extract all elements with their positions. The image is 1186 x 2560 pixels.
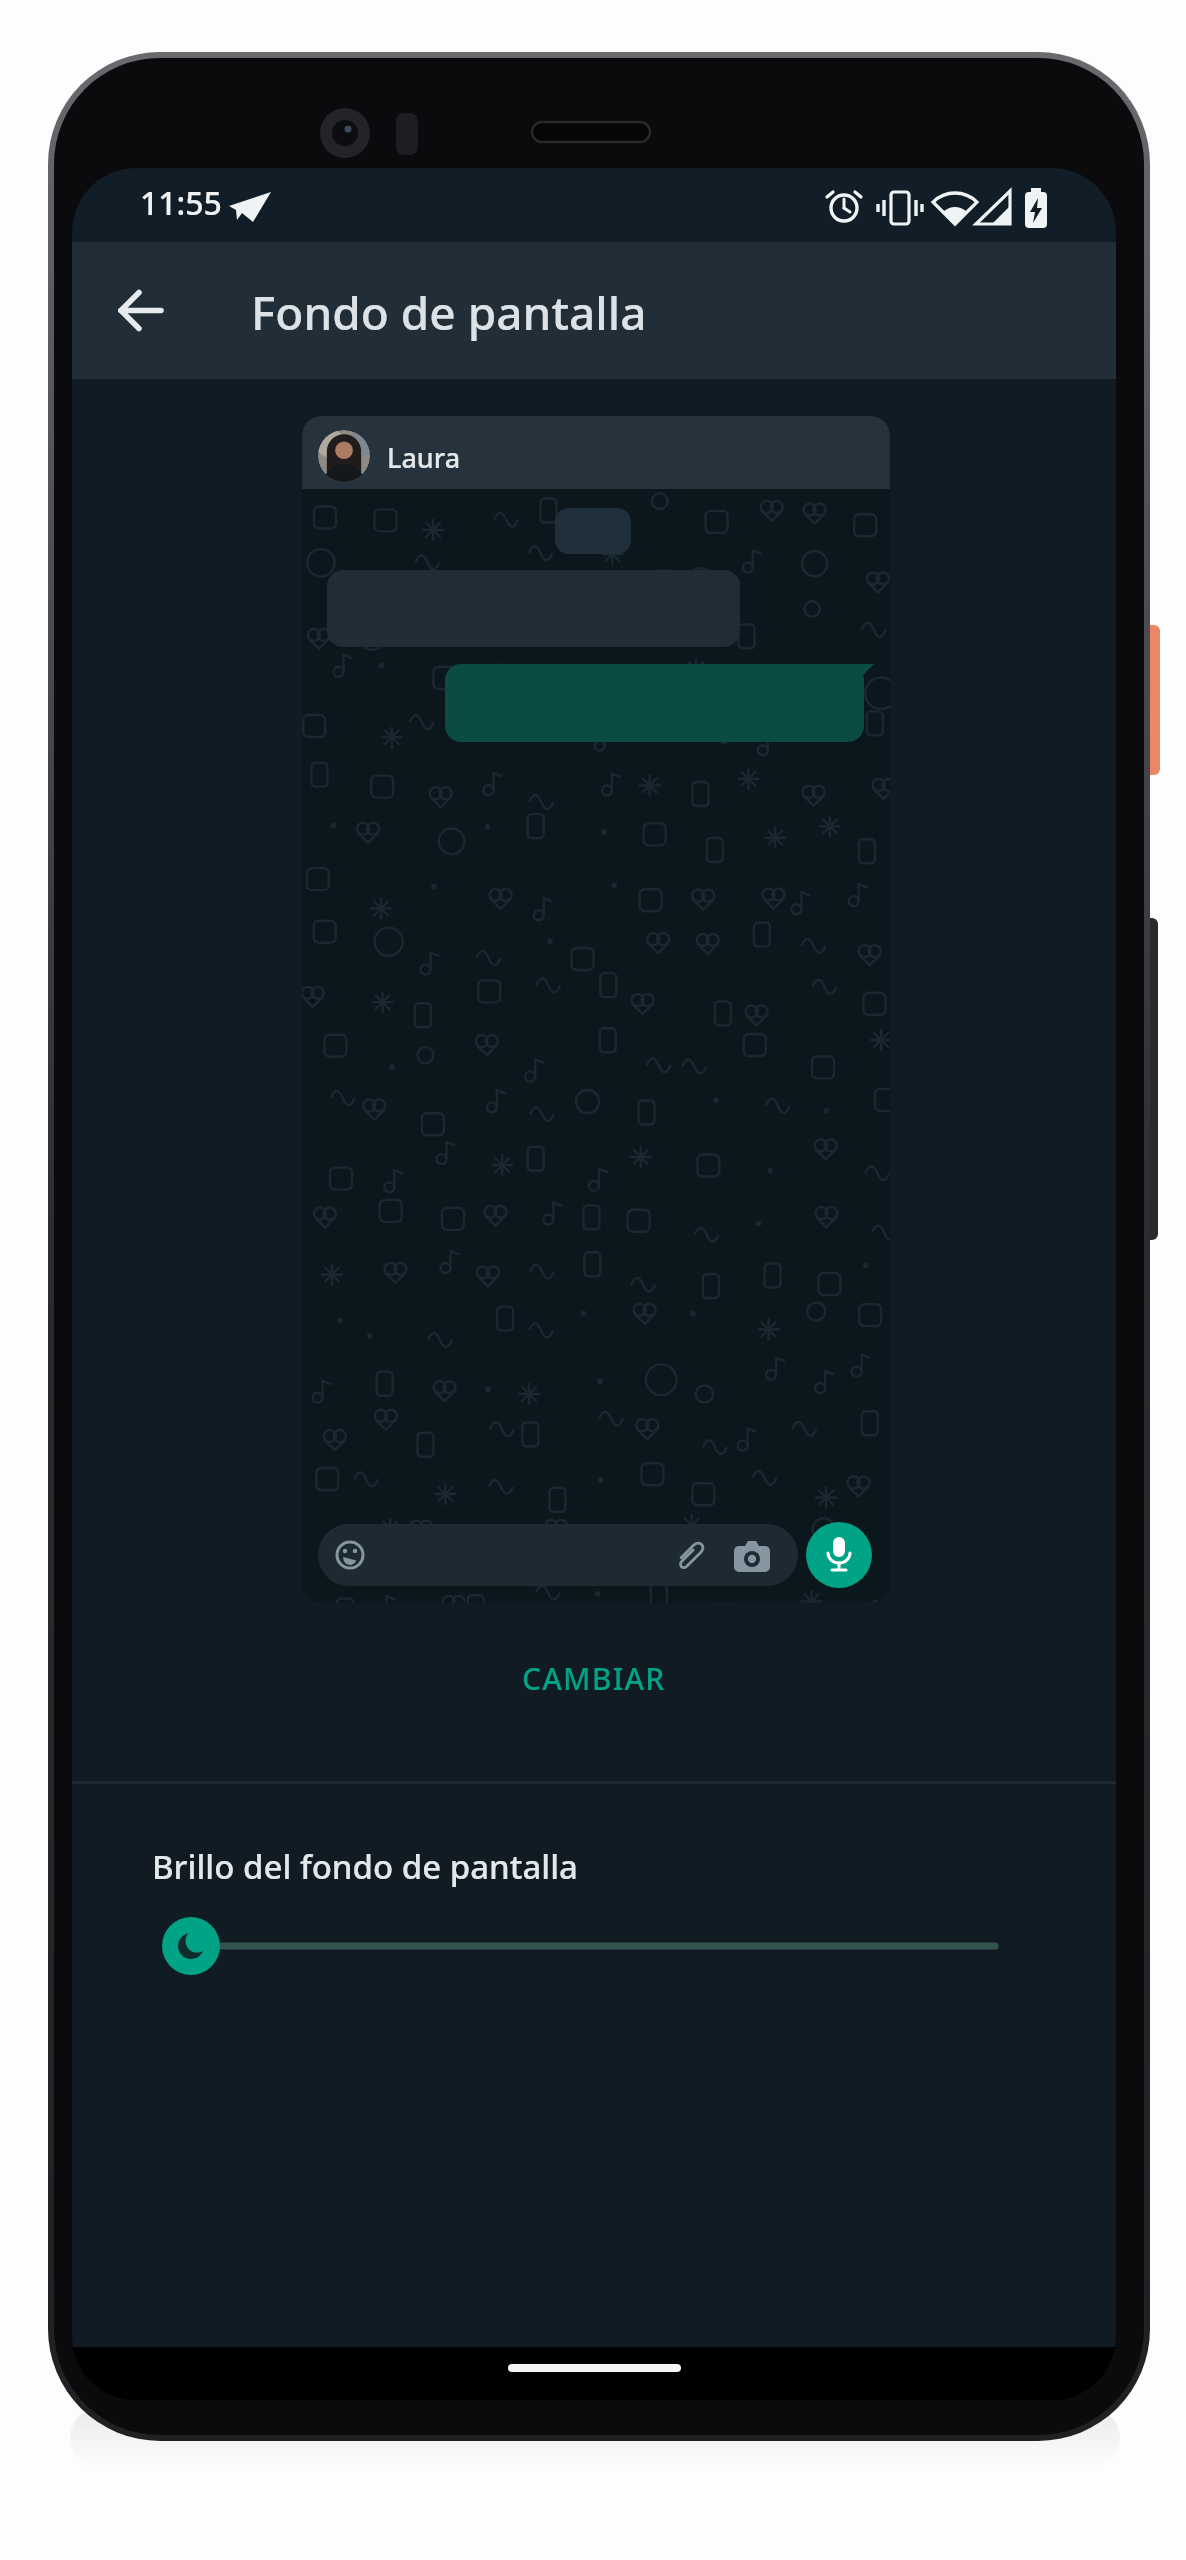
staticText: 11:55 [140,181,222,225]
button[interactable] [121,242,161,379]
button[interactable] [318,1524,798,1586]
staticText: Brillo del fondo de pantalla [152,1844,578,1889]
button[interactable]: CAMBIAR [502,1638,686,1718]
button[interactable] [72,242,1116,379]
staticText: Fondo de pantalla [251,281,647,344]
staticText: Laura [387,439,461,476]
button[interactable] [806,1522,872,1588]
staticText: CAMBIAR [522,1658,666,1699]
button[interactable] [302,416,890,489]
button[interactable] [152,1908,1032,1984]
